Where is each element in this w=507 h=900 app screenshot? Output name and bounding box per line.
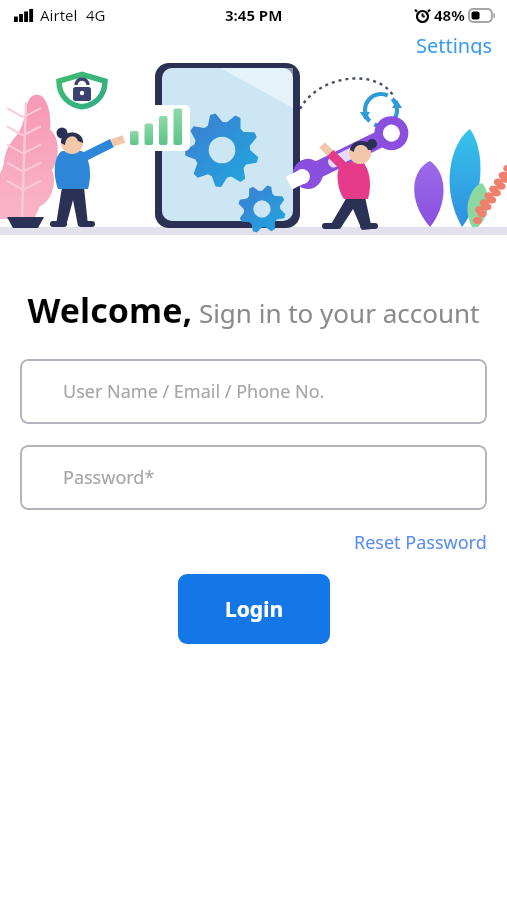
staticText: Login <box>225 595 284 624</box>
button[interactable]: Reset Password <box>334 527 507 558</box>
staticText: Airtel <box>40 5 78 25</box>
staticText: Settings <box>416 32 493 55</box>
button[interactable]: Login <box>178 574 330 644</box>
staticText: Reset Password <box>354 530 487 555</box>
staticText: 4G <box>86 5 106 25</box>
button[interactable]: User Name / Email / Phone No. <box>20 359 487 424</box>
button[interactable]: Password* <box>20 445 487 510</box>
staticText: 48% <box>434 5 465 25</box>
staticText: Password* <box>63 465 155 490</box>
staticText: 3:45 PM <box>225 5 283 25</box>
button[interactable]: Settings <box>402 30 507 57</box>
staticText: Welcome, Sign in to your account <box>26 287 481 333</box>
staticText: User Name / Email / Phone No. <box>63 379 325 404</box>
